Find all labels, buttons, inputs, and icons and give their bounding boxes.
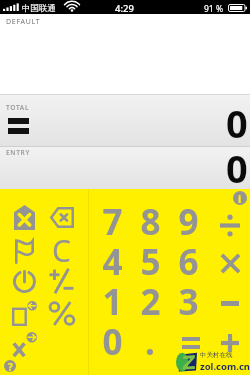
staticText: 0 bbox=[226, 142, 248, 194]
button[interactable]: 9 bbox=[169, 198, 207, 238]
button[interactable] bbox=[6, 297, 43, 329]
staticText: 7 bbox=[102, 198, 123, 238]
staticText: ? bbox=[8, 360, 13, 372]
button[interactable]: Help bbox=[4, 360, 16, 372]
button[interactable]: Subtract bbox=[211, 283, 249, 323]
button[interactable] bbox=[43, 265, 80, 297]
staticText: 4:29 bbox=[115, 2, 134, 15]
staticText: DEFAULT bbox=[6, 17, 41, 27]
staticText: 1 bbox=[102, 278, 123, 318]
staticText: 中国联通 bbox=[22, 3, 56, 14]
button[interactable]: Multiply bbox=[211, 243, 249, 283]
button[interactable]: 3 bbox=[169, 278, 207, 318]
staticText: 0 bbox=[226, 97, 248, 149]
button[interactable]: Add bbox=[211, 323, 249, 363]
staticText: 9 bbox=[178, 198, 199, 238]
button[interactable] bbox=[6, 201, 43, 233]
button[interactable]: 0 bbox=[93, 318, 131, 358]
staticText: ENTRY bbox=[6, 148, 31, 157]
staticText: 6 bbox=[178, 238, 199, 278]
button[interactable]: 4 bbox=[93, 238, 131, 278]
button[interactable] bbox=[6, 233, 43, 265]
staticText: 3 bbox=[178, 278, 199, 318]
button[interactable] bbox=[43, 297, 80, 329]
button[interactable]: Equals bbox=[172, 323, 210, 363]
button[interactable] bbox=[6, 329, 43, 361]
button[interactable]: . bbox=[131, 318, 169, 358]
staticText: 8 bbox=[140, 198, 161, 238]
staticText: 2 bbox=[140, 278, 161, 318]
staticText: C bbox=[52, 230, 71, 262]
button[interactable]: 7 bbox=[93, 198, 131, 238]
staticText: . bbox=[145, 318, 155, 358]
button[interactable]: 6 bbox=[169, 238, 207, 278]
staticText: 中关村在线 bbox=[200, 351, 233, 359]
staticText: i bbox=[238, 191, 242, 205]
staticText: 4 bbox=[102, 238, 123, 278]
staticText: 0 bbox=[102, 318, 123, 358]
button[interactable]: Total bbox=[8, 118, 29, 134]
button[interactable]: 2 bbox=[131, 278, 169, 318]
button[interactable]: 1 bbox=[93, 278, 131, 318]
button[interactable]: 5 bbox=[131, 238, 169, 278]
button[interactable]: Divide bbox=[211, 205, 249, 245]
staticText: 91 % bbox=[204, 3, 223, 15]
button[interactable]: 8 bbox=[131, 198, 169, 238]
button[interactable] bbox=[43, 201, 80, 233]
button[interactable] bbox=[6, 265, 43, 297]
staticText: 5 bbox=[140, 238, 161, 278]
staticText: zol.com.cn bbox=[200, 360, 250, 373]
button[interactable]: C bbox=[43, 233, 80, 265]
button[interactable]: Info bbox=[233, 191, 247, 205]
staticText: TOTAL bbox=[6, 103, 30, 112]
